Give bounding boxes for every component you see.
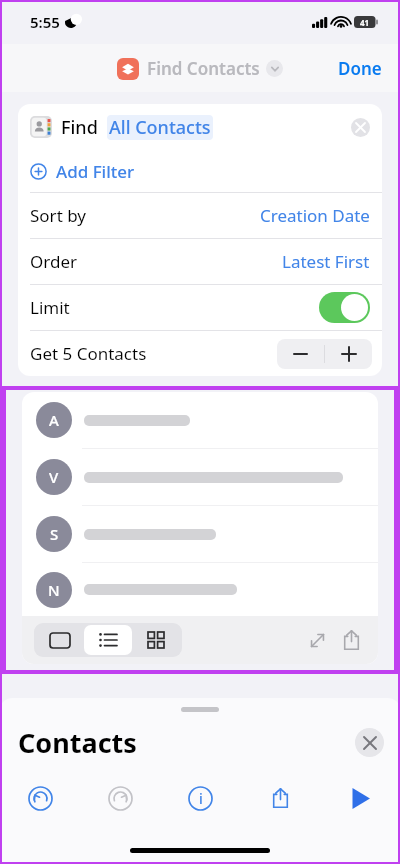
button[interactable]: Clear	[351, 118, 370, 137]
button[interactable]: Limit toggle	[319, 292, 370, 323]
staticText: A	[49, 410, 59, 430]
staticText: Find	[61, 115, 98, 140]
button[interactable]: View mode	[132, 625, 180, 655]
button[interactable]: N	[22, 563, 378, 616]
button[interactable]: Share	[262, 780, 298, 816]
button[interactable]: Increase	[325, 339, 372, 369]
button[interactable]: Info	[182, 780, 218, 816]
staticText: N	[48, 580, 60, 600]
button[interactable]: View mode	[84, 625, 132, 655]
staticText: Limit	[30, 296, 70, 319]
button[interactable]: More options	[266, 60, 283, 77]
staticText: All Contacts	[109, 115, 211, 140]
button[interactable]: Find	[18, 104, 382, 150]
button[interactable]: Add Filter	[18, 150, 382, 192]
staticText: Add Filter	[56, 160, 135, 183]
staticText: 41	[360, 17, 370, 28]
button[interactable]: V	[22, 449, 378, 505]
staticText: Sort by	[30, 204, 86, 227]
button[interactable]: Expand	[302, 625, 332, 655]
staticText: Order	[30, 250, 78, 273]
button[interactable]: Redo	[102, 780, 138, 816]
button[interactable]: Sort by	[18, 193, 382, 238]
staticText: S	[50, 524, 59, 544]
staticText: Contacts	[18, 724, 137, 761]
staticText: Get 5 Contacts	[30, 342, 147, 365]
staticText: Latest First	[282, 250, 370, 273]
button[interactable]: Close	[355, 728, 384, 757]
staticText: Done	[338, 57, 382, 80]
button[interactable]: Order	[18, 239, 382, 284]
button[interactable]: View mode	[36, 625, 84, 655]
button[interactable]: Limit	[18, 285, 382, 330]
button[interactable]: Run	[342, 780, 378, 816]
button[interactable]: Decrease	[277, 339, 324, 369]
staticText: Find Contacts	[147, 57, 260, 80]
staticText: 5:55	[30, 12, 60, 32]
button[interactable]: Get 5 Contacts	[18, 331, 382, 376]
button[interactable]: Share	[336, 625, 366, 655]
button[interactable]: Undo	[22, 780, 58, 816]
staticText: i	[199, 789, 203, 808]
staticText: V	[49, 467, 59, 487]
staticText: Creation Date	[260, 204, 370, 227]
button[interactable]: Done	[338, 57, 382, 80]
button[interactable]: S	[22, 506, 378, 562]
button[interactable]: A	[22, 392, 378, 448]
